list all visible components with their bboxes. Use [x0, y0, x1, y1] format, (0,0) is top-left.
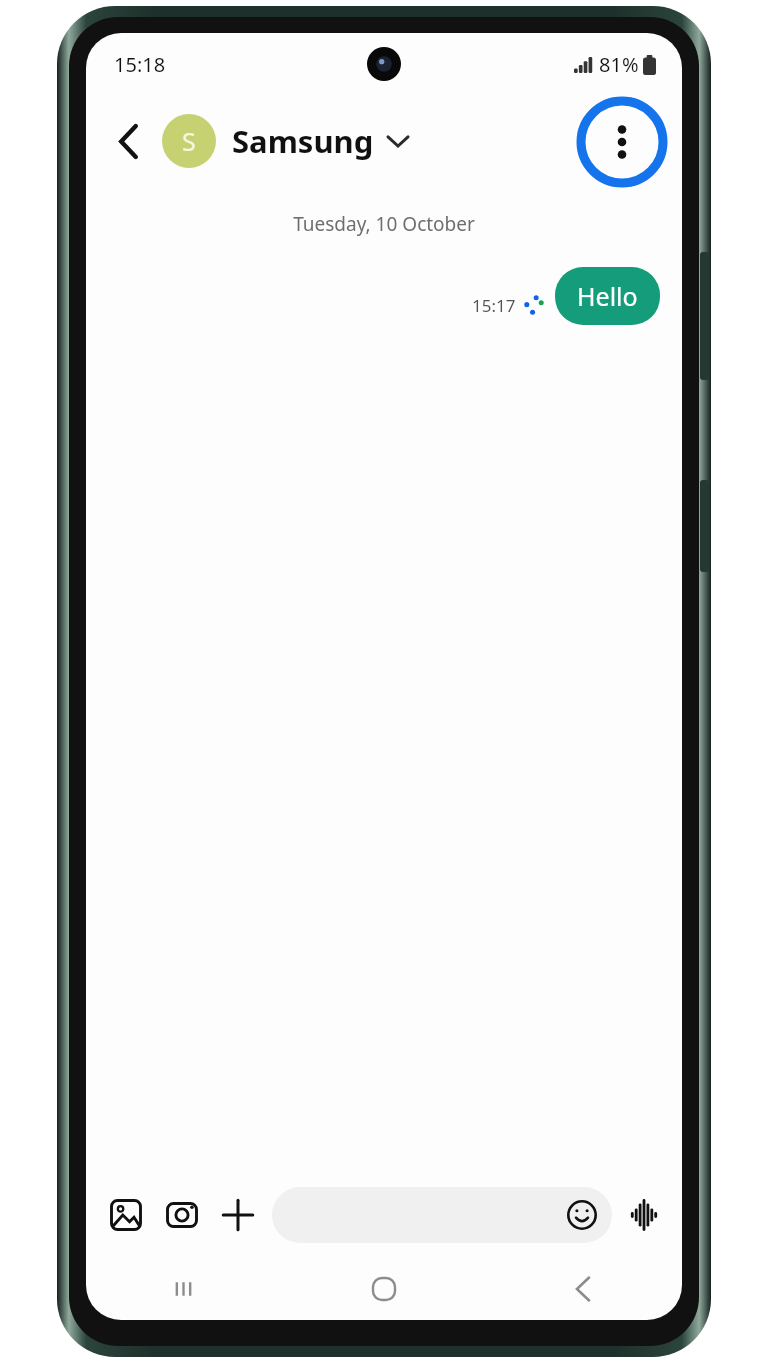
staticText: 81%	[599, 51, 639, 78]
staticText: S	[182, 124, 196, 158]
button[interactable]: S	[162, 114, 216, 168]
staticText: Hello	[577, 279, 638, 313]
button[interactable]: More options	[576, 96, 668, 188]
button[interactable]: Gallery	[98, 1187, 154, 1243]
button[interactable]: Emoji	[272, 1187, 612, 1243]
staticText: Tuesday, 10 October	[86, 211, 682, 237]
staticText: Samsung	[232, 120, 374, 162]
staticText: 15:17	[472, 294, 516, 317]
button[interactable]: Samsung	[232, 120, 408, 162]
button[interactable]: Hello	[555, 267, 660, 325]
button[interactable]: Home	[284, 1258, 483, 1320]
button[interactable]: Voice message	[616, 1187, 672, 1243]
button[interactable]: Emoji	[562, 1195, 602, 1235]
button[interactable]: Camera	[154, 1187, 210, 1243]
button[interactable]: Back	[483, 1258, 682, 1320]
button[interactable]: Recent apps	[86, 1258, 284, 1320]
button[interactable]: Back	[104, 117, 152, 165]
button[interactable]: Add attachment	[210, 1187, 266, 1243]
staticText: 15:18	[114, 51, 166, 78]
